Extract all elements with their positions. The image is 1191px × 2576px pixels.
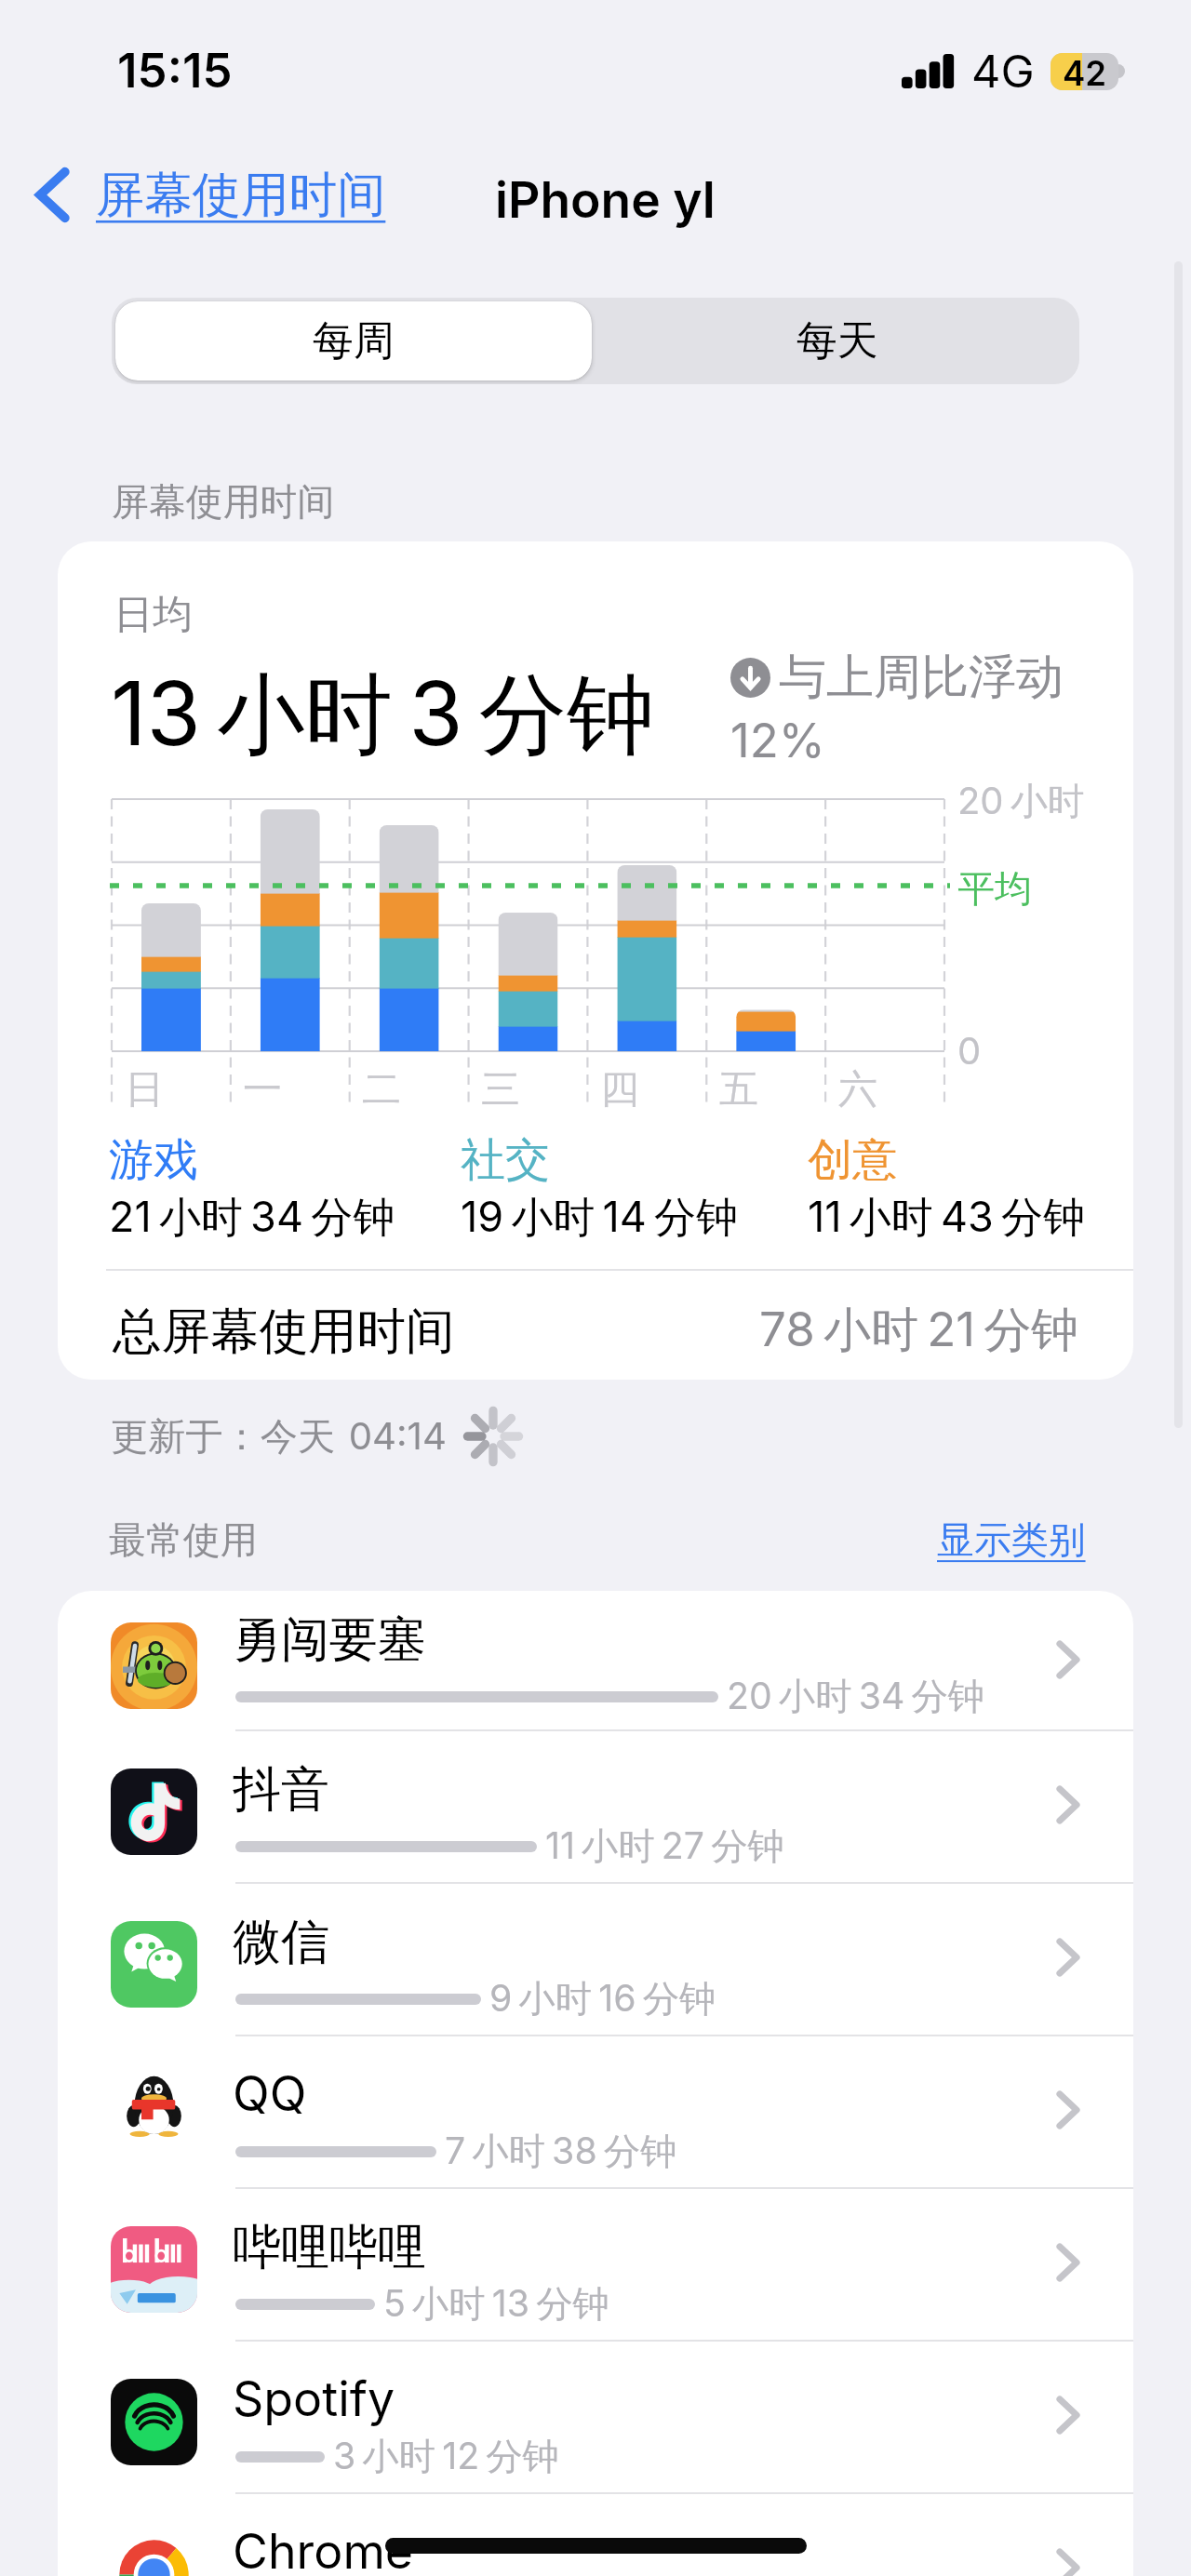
button[interactable]: 每周 xyxy=(115,301,592,380)
staticText: 屏幕使用时间 xyxy=(96,165,386,225)
button[interactable]: 显示类别 xyxy=(937,1517,1086,1564)
staticText: 三 xyxy=(481,1065,520,1114)
button[interactable]: Back xyxy=(36,150,386,239)
staticText: 勇闯要塞 xyxy=(233,1609,426,1670)
staticText: 微信 xyxy=(233,1912,329,1972)
other: Open 抖音 xyxy=(1060,1789,1077,1821)
staticText: 13 小时 3 分钟 xyxy=(111,660,655,771)
button[interactable]: 哔哩哔哩 xyxy=(58,2187,1133,2340)
other: Open 微信 xyxy=(1060,1942,1077,1973)
staticText: 平均 xyxy=(957,866,1032,913)
staticText: 11 小时 27 分钟 xyxy=(545,1823,784,1870)
button[interactable]: QQ xyxy=(58,2035,1133,2187)
button[interactable]: 勇闯要塞 xyxy=(58,1591,1133,1729)
staticText: 每天 xyxy=(796,315,878,367)
staticText: 7 小时 38 分钟 xyxy=(445,2129,677,2175)
staticText: 11 小时 43 分钟 xyxy=(808,1191,1085,1244)
staticText: 5 小时 13 分钟 xyxy=(383,2281,609,2328)
other: Open 勇闯要塞 xyxy=(1060,1644,1077,1675)
staticText: 4G xyxy=(971,44,1035,99)
button[interactable]: Chrome xyxy=(58,2492,1133,2576)
button[interactable]: 每天 xyxy=(595,298,1079,384)
staticText: 社交 xyxy=(461,1132,550,1188)
other: Open Chrome xyxy=(1060,2552,1077,2576)
staticText: 更新于：今天 04:14 xyxy=(111,1413,447,1461)
staticText: 42 xyxy=(1063,53,1107,90)
staticText: 20 小时 34 分钟 xyxy=(727,1674,985,1720)
staticText: 抖音 xyxy=(233,1759,329,1820)
staticText: 19 小时 14 分钟 xyxy=(461,1191,739,1244)
staticText: 屏幕使用时间 xyxy=(112,479,335,526)
staticText: 78 小时 21 分钟 xyxy=(759,1301,1079,1361)
button[interactable]: 微信 xyxy=(58,1882,1133,2035)
staticText: 与上周比浮动 xyxy=(779,647,1064,707)
staticText: 12% xyxy=(730,712,825,769)
staticText: Chrome xyxy=(233,2522,414,2576)
staticText: 六 xyxy=(838,1065,877,1114)
other: Open QQ xyxy=(1060,2094,1077,2126)
staticText: 最常使用 xyxy=(109,1517,258,1564)
staticText: iPhone yl xyxy=(495,169,716,230)
staticText: 15:15 xyxy=(117,42,233,100)
staticText: Spotify xyxy=(233,2369,395,2428)
staticText: 一 xyxy=(243,1065,282,1114)
staticText: 每周 xyxy=(313,315,395,367)
staticText: 3 小时 12 分钟 xyxy=(333,2434,559,2480)
staticText: 0 xyxy=(957,1028,982,1073)
staticText: 日均 xyxy=(114,590,194,640)
other: Open 哔哩哔哩 xyxy=(1060,2247,1077,2278)
other: Back xyxy=(36,169,69,220)
staticText: 五 xyxy=(719,1065,758,1114)
button[interactable]: Spotify xyxy=(58,2340,1133,2492)
staticText: 哔哩哔哩 xyxy=(233,2217,426,2277)
staticText: 总屏幕使用时间 xyxy=(113,1301,455,1362)
staticText: 9 小时 16 分钟 xyxy=(489,1976,716,2022)
staticText: 四 xyxy=(600,1065,639,1114)
staticText: 游戏 xyxy=(109,1132,198,1188)
staticText: QQ xyxy=(233,2064,307,2123)
staticText: 21 小时 34 分钟 xyxy=(109,1191,395,1244)
button[interactable]: 抖音 xyxy=(58,1729,1133,1882)
staticText: 20 小时 xyxy=(957,778,1085,824)
staticText: 二 xyxy=(362,1065,401,1114)
staticText: 创意 xyxy=(808,1132,897,1188)
other: Open Spotify xyxy=(1060,2399,1077,2431)
staticText: 日 xyxy=(125,1065,164,1114)
